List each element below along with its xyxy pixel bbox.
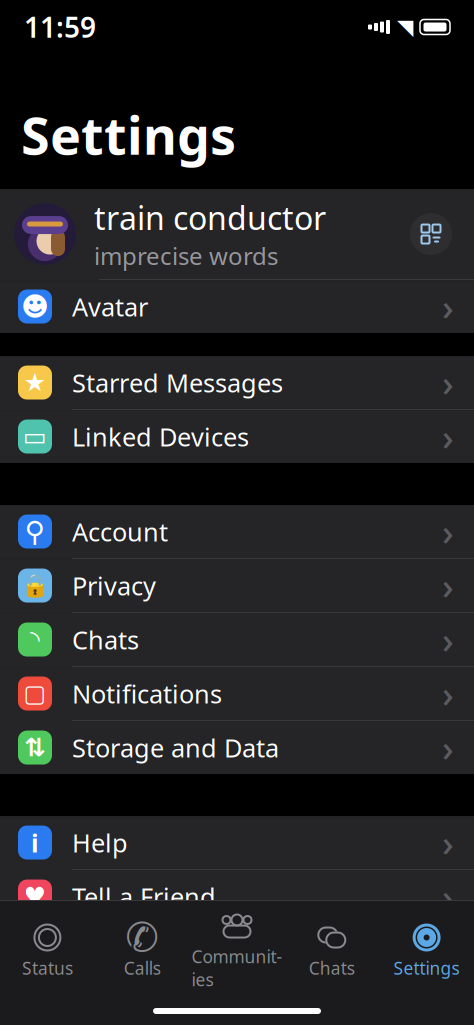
staticText: › — [442, 562, 454, 609]
button[interactable]: Chats — [284, 912, 379, 979]
button[interactable]: Status — [0, 912, 95, 979]
staticText: ★ — [23, 368, 46, 397]
staticText: Starred Messages — [72, 366, 283, 399]
staticText: Chats — [72, 623, 139, 656]
button[interactable]: ◝ — [0, 613, 474, 667]
staticText: Status — [22, 956, 73, 979]
button[interactable]: ♥ — [0, 870, 474, 923]
staticText: › — [442, 508, 454, 555]
staticText: train conductor — [94, 196, 326, 239]
staticText: Storage and Data — [72, 731, 279, 764]
staticText: ⚲ — [24, 516, 45, 547]
staticText: › — [442, 616, 454, 663]
staticText: ◝ — [30, 625, 40, 654]
staticText: › — [442, 724, 454, 771]
button[interactable]: 🔒 — [0, 559, 474, 613]
staticText: Notifications — [72, 677, 222, 710]
staticText: ✆ — [125, 915, 159, 960]
button[interactable]: ⚲ — [0, 505, 474, 559]
staticText: › — [442, 413, 454, 460]
staticText: Tell a Friend — [72, 880, 216, 913]
staticText: imprecise words — [94, 240, 278, 272]
staticText: Linked Devices — [72, 420, 249, 453]
button[interactable]: Communities — [190, 901, 284, 991]
staticText: › — [442, 819, 454, 866]
staticText: › — [442, 873, 454, 920]
staticText: Settings — [21, 100, 236, 169]
staticText: ▭ — [23, 422, 47, 451]
staticText: ♥ — [23, 882, 46, 911]
staticText: ☻ — [21, 291, 49, 322]
button[interactable]: ★ — [0, 356, 474, 410]
staticText: Settings — [394, 956, 460, 979]
staticText: Chats — [309, 956, 355, 979]
staticText: 🔒 — [21, 573, 49, 598]
button[interactable]: ☻ — [0, 280, 474, 333]
staticText: i — [31, 826, 39, 859]
staticText: Communities — [191, 945, 282, 991]
staticText: ⇅ — [24, 733, 45, 762]
button[interactable]: ⇅ — [0, 721, 474, 774]
staticText: Privacy — [72, 569, 156, 602]
button[interactable]: Settings — [379, 912, 474, 979]
staticText: 11:59 — [24, 8, 96, 46]
button[interactable]: i — [0, 816, 474, 870]
button[interactable]: ▢ — [0, 667, 474, 721]
staticText: › — [442, 670, 454, 717]
staticText: Account — [72, 515, 168, 548]
button[interactable]: ▭ — [0, 410, 474, 463]
staticText: › — [442, 359, 454, 406]
button[interactable]: ✆ — [95, 912, 190, 979]
staticText: › — [442, 283, 454, 330]
staticText: Calls — [124, 956, 161, 979]
staticText: Avatar — [72, 290, 148, 323]
button[interactable]: train conductor — [0, 189, 474, 280]
staticText: ◥ — [397, 15, 413, 39]
staticText: ▢ — [23, 680, 46, 707]
staticText: Help — [72, 826, 128, 859]
